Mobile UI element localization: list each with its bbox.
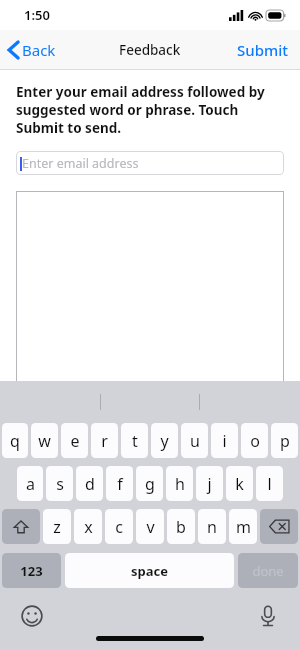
button[interactable]: f	[106, 466, 133, 501]
staticText: Submit	[237, 40, 288, 60]
staticText: g	[145, 473, 155, 495]
button[interactable]: Shift	[2, 509, 40, 544]
button[interactable]: b	[167, 509, 195, 544]
staticText: c	[115, 516, 123, 538]
button[interactable]: p	[271, 423, 298, 458]
button[interactable]: Dictation	[252, 600, 284, 632]
button[interactable]: o	[241, 423, 268, 458]
button[interactable]: r	[91, 423, 118, 458]
button[interactable]: d	[76, 466, 103, 501]
button[interactable]: Back	[0, 36, 64, 64]
button[interactable]: c	[105, 509, 133, 544]
staticText: i	[222, 430, 227, 452]
staticText: 123	[20, 562, 43, 580]
button[interactable]: m	[229, 509, 257, 544]
button[interactable]: l	[256, 466, 283, 501]
staticText: x	[84, 516, 93, 538]
staticText: space	[131, 562, 168, 580]
staticText: y	[160, 430, 169, 452]
staticText: f	[117, 473, 123, 495]
button[interactable]: u	[181, 423, 208, 458]
button[interactable]: Submit	[225, 34, 300, 66]
staticText: j	[207, 473, 212, 495]
button[interactable]: e	[61, 423, 88, 458]
button[interactable]: j	[196, 466, 223, 501]
staticText: a	[26, 473, 35, 495]
button[interactable]: k	[226, 466, 253, 501]
staticText: b	[176, 516, 186, 538]
staticText: Back	[22, 40, 56, 60]
button[interactable]: w	[31, 423, 58, 458]
staticText: d	[85, 473, 95, 495]
staticText: 1:50	[24, 6, 50, 24]
button[interactable]: Delete	[260, 509, 298, 544]
button[interactable]: v	[136, 509, 164, 544]
button[interactable]: i	[211, 423, 238, 458]
staticText: u	[190, 430, 200, 452]
button[interactable]: z	[43, 509, 71, 544]
staticText: e	[70, 430, 80, 452]
button[interactable]: y	[151, 423, 178, 458]
button[interactable]: h	[166, 466, 193, 501]
staticText: z	[53, 516, 61, 538]
staticText: v	[146, 516, 155, 538]
button[interactable]: x	[74, 509, 102, 544]
staticText: s	[56, 473, 64, 495]
staticText: n	[207, 516, 217, 538]
button[interactable]	[16, 191, 284, 649]
button[interactable]: 123	[2, 553, 61, 588]
button[interactable]: n	[198, 509, 226, 544]
staticText: m	[236, 516, 251, 538]
staticText: Enter email address	[22, 155, 139, 172]
button[interactable]: g	[136, 466, 163, 501]
button[interactable]: done	[238, 553, 298, 588]
staticText: k	[235, 473, 244, 495]
button[interactable]: Enter email address	[16, 151, 284, 175]
staticText: Feedback	[119, 41, 181, 59]
button[interactable]: s	[46, 466, 73, 501]
staticText: done	[252, 562, 284, 580]
staticText: w	[38, 430, 51, 452]
button[interactable]: a	[17, 466, 43, 501]
staticText: h	[175, 473, 185, 495]
staticText: p	[280, 430, 290, 452]
staticText: l	[267, 473, 272, 495]
button[interactable]: q	[2, 423, 28, 458]
staticText: r	[101, 430, 108, 452]
button[interactable]: t	[121, 423, 148, 458]
button[interactable]: Emoji keyboard	[16, 600, 48, 632]
staticText: q	[10, 430, 20, 452]
button[interactable]: space	[65, 553, 234, 588]
staticText: o	[250, 430, 260, 452]
staticText: t	[132, 430, 138, 452]
staticText: Enter your email address followed by sug…	[16, 83, 284, 137]
